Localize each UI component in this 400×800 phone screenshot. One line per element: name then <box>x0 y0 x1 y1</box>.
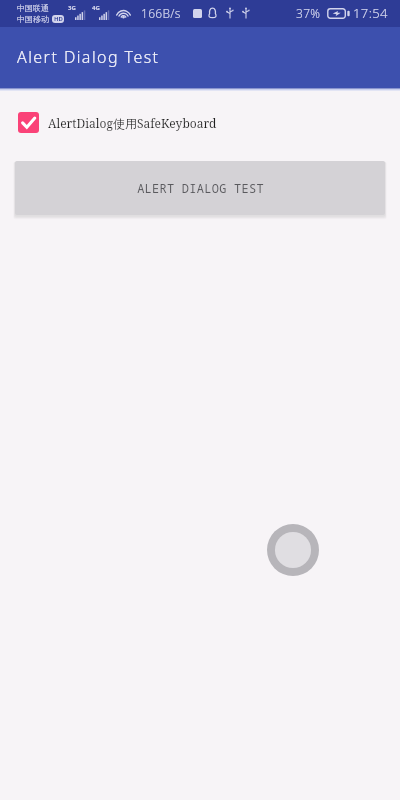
staticText: Alert Dialog Test <box>17 46 160 68</box>
staticText: HD <box>54 15 63 23</box>
staticText: 中国联通 <box>17 3 49 13</box>
button[interactable]: AlertDialog使用SafeKeyboard <box>18 112 217 133</box>
staticText: 3G <box>68 4 76 12</box>
staticText: ALERT DIALOG TEST <box>137 180 264 196</box>
staticText: 4G <box>92 4 100 12</box>
staticText: 37% <box>296 5 321 21</box>
staticText: AlertDialog使用SafeKeyboard <box>48 115 217 131</box>
staticText: 17:54 <box>353 4 388 22</box>
button[interactable]: Assistive touch <box>267 524 319 576</box>
staticText: 166B/s <box>141 5 181 21</box>
button[interactable]: ALERT DIALOG TEST <box>15 161 385 215</box>
staticText: 中国移动 <box>17 14 49 24</box>
